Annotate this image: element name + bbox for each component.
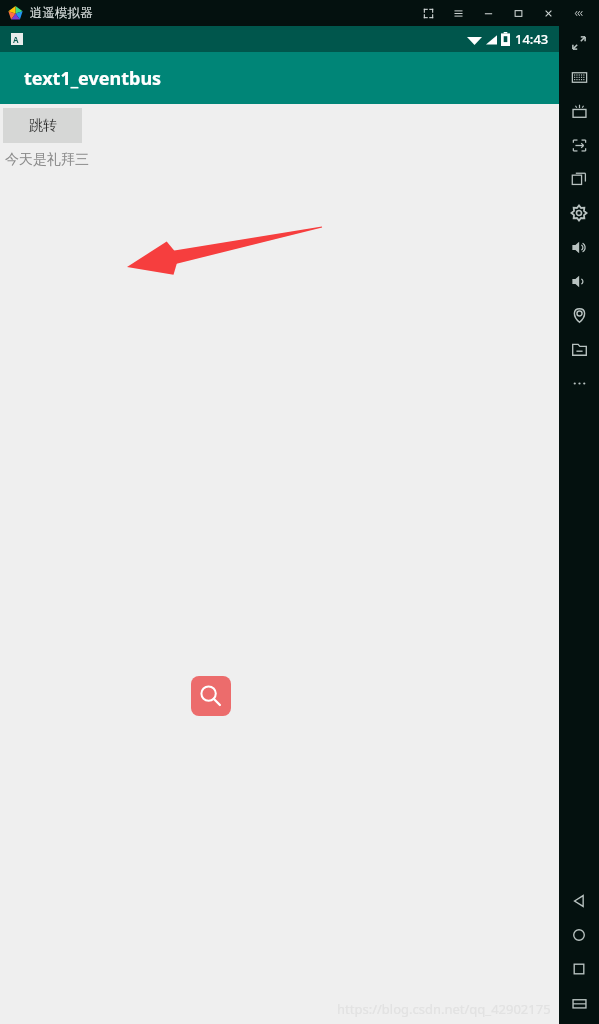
button[interactable]: Share to device (559, 128, 599, 162)
button[interactable]: Menu (443, 0, 473, 26)
button[interactable]: Record (559, 986, 599, 1020)
button[interactable]: Search (191, 676, 231, 716)
button[interactable]: More (559, 366, 599, 400)
button[interactable]: Maximize (503, 0, 533, 26)
button[interactable]: Install APK (559, 94, 599, 128)
button[interactable]: 跳转 (3, 108, 82, 143)
staticText: 跳转 (29, 117, 57, 135)
staticText: 14:43 (515, 30, 549, 48)
button[interactable]: Location (559, 298, 599, 332)
button[interactable]: Minimize (473, 0, 503, 26)
button[interactable]: Multi instance (559, 162, 599, 196)
button[interactable]: Fullscreen (559, 26, 599, 60)
button[interactable]: Home (559, 918, 599, 952)
staticText: 逍遥模拟器 (30, 5, 93, 21)
button[interactable]: Back (559, 884, 599, 918)
button[interactable]: Volume up (559, 230, 599, 264)
staticText: https://blog.csdn.net/qq_42902175 (337, 1000, 551, 1018)
staticText: A (13, 34, 19, 45)
staticText: 今天是礼拜三 (5, 151, 89, 169)
button[interactable]: Collapse (563, 0, 593, 26)
button[interactable]: Volume down (559, 264, 599, 298)
button[interactable]: Files (559, 332, 599, 366)
button[interactable]: Keyboard (559, 60, 599, 94)
button[interactable]: Recents (559, 952, 599, 986)
button[interactable]: Settings (559, 196, 599, 230)
staticText: text1_eventbus (24, 66, 162, 91)
button[interactable]: Screenshot (413, 0, 443, 26)
button[interactable]: Close (533, 0, 563, 26)
